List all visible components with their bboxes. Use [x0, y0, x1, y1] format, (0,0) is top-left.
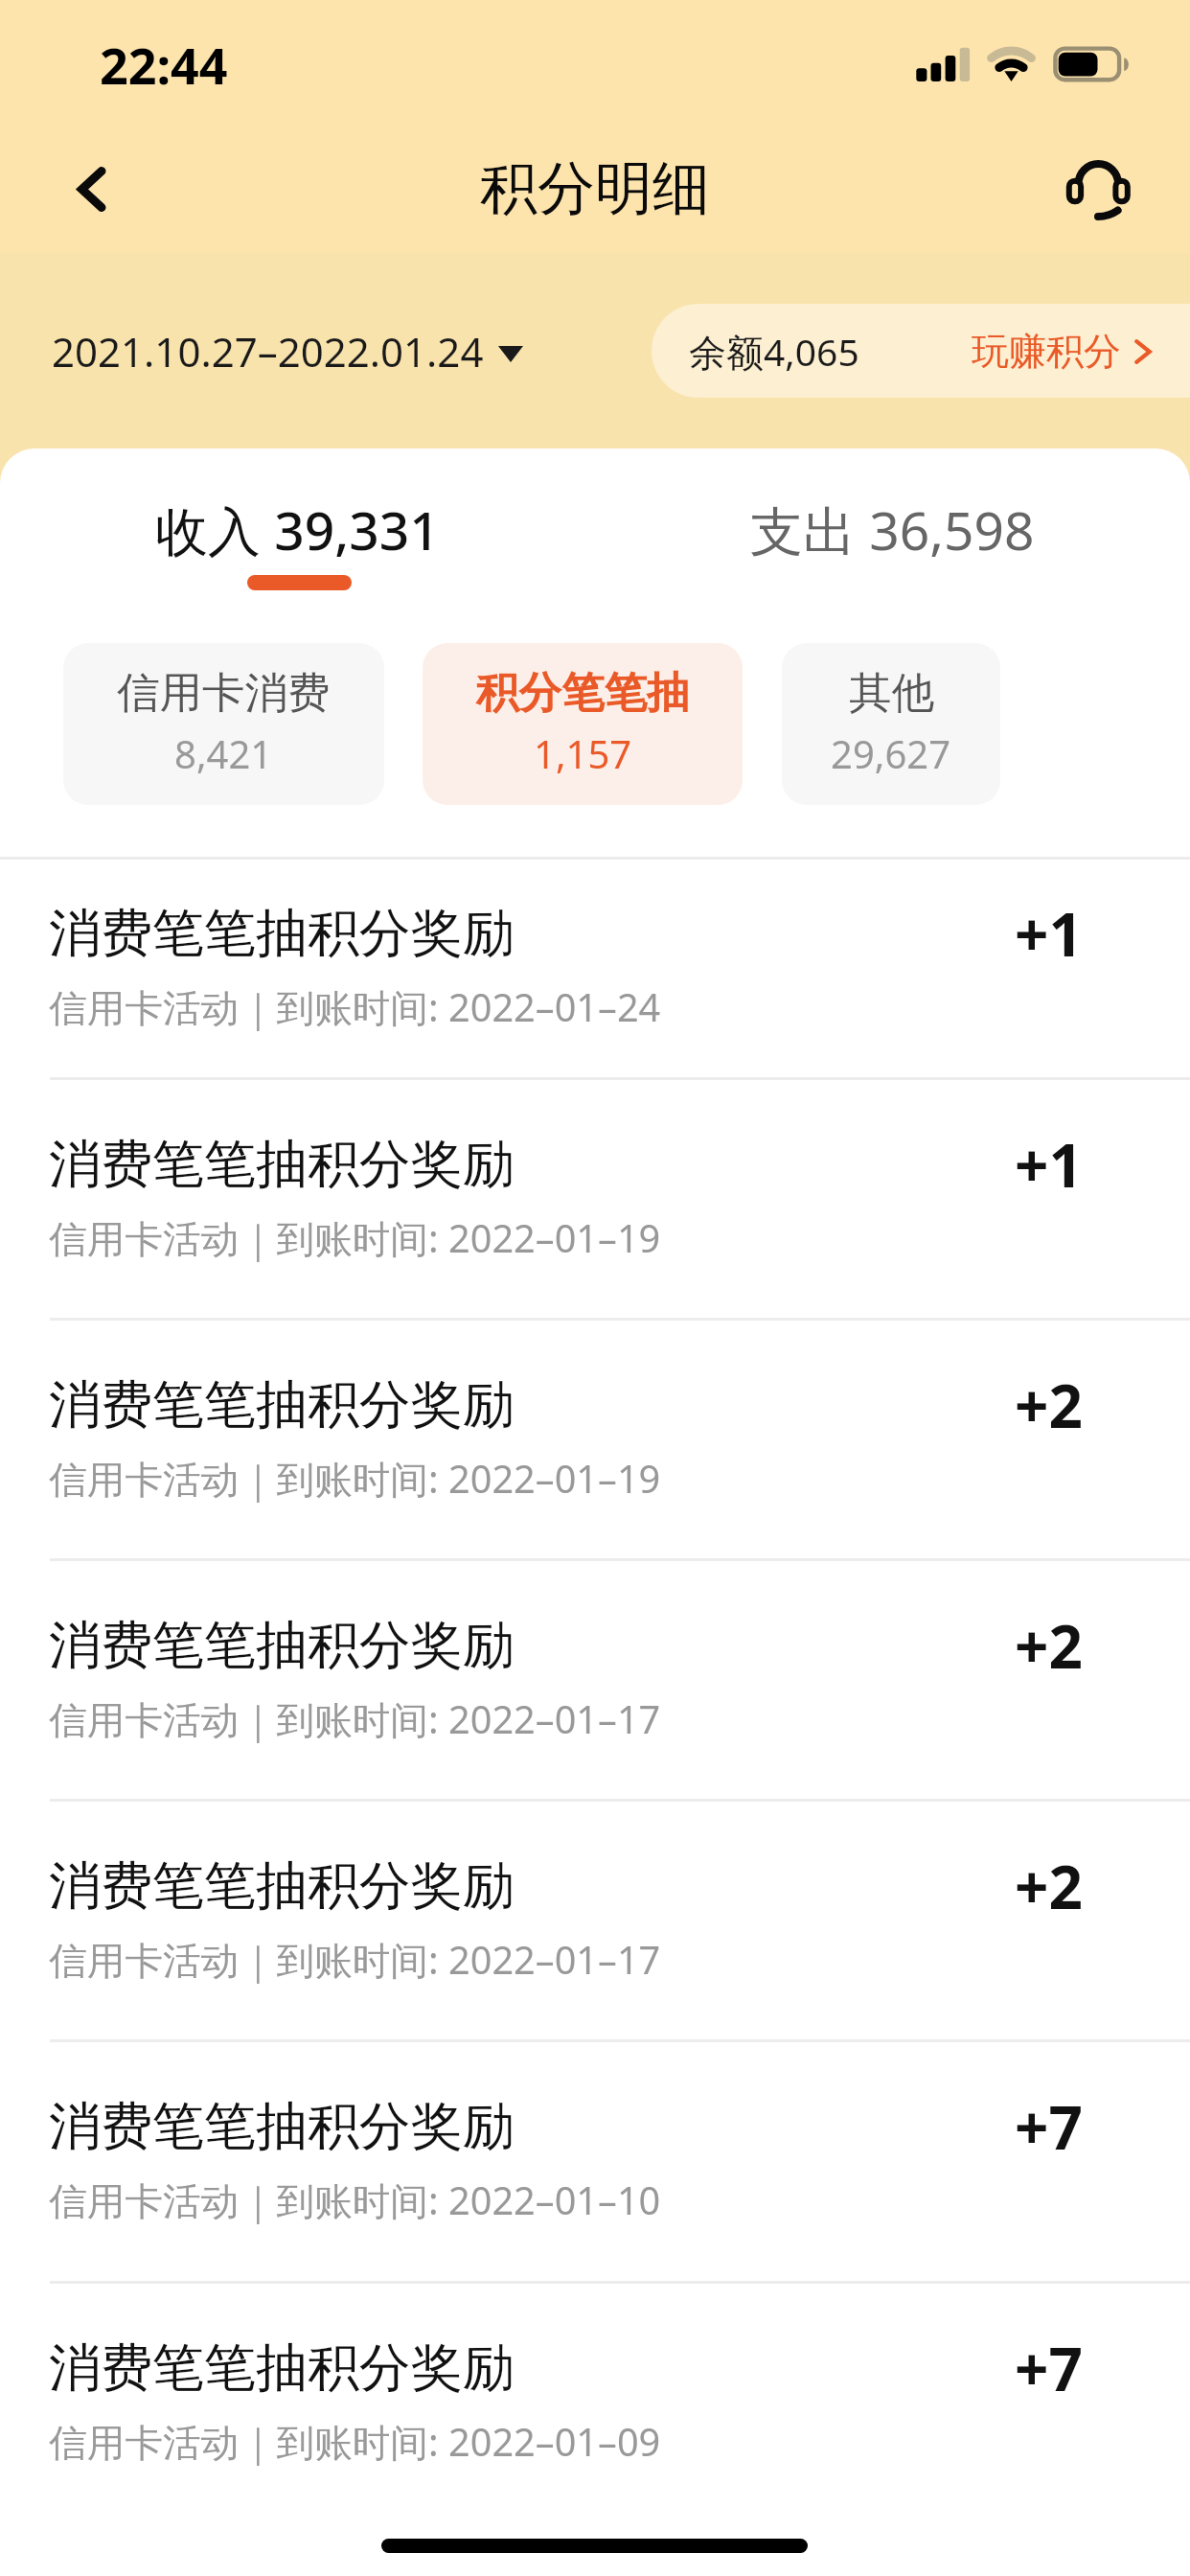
staticText: +1: [1015, 893, 1083, 974]
staticText: 消费笔笔抽积分奖励: [49, 2094, 515, 2159]
button[interactable]: 消费笔笔抽积分奖励: [0, 1802, 1190, 2042]
staticText: 消费笔笔抽积分奖励: [49, 1613, 515, 1678]
staticText: 其他: [849, 666, 934, 720]
staticText: 收入 39,331: [155, 494, 440, 565]
button[interactable]: 收入 39,331: [0, 479, 595, 580]
button[interactable]: 玩赚积分: [972, 328, 1152, 375]
button[interactable]: 消费笔笔抽积分奖励: [0, 1321, 1190, 1561]
staticText: 信用卡活动｜到账时间: 2022–01–17: [49, 1934, 661, 1986]
button[interactable]: 消费笔笔抽积分奖励: [0, 1080, 1190, 1321]
staticText: 支出 36,598: [750, 494, 1035, 565]
staticText: +7: [1015, 2328, 1083, 2408]
button[interactable]: 其他: [782, 643, 1000, 805]
staticText: 余额4,065: [689, 326, 859, 377]
button[interactable]: 消费笔笔抽积分奖励: [0, 2042, 1190, 2284]
button[interactable]: 信用卡消费: [63, 643, 384, 805]
staticText: 消费笔笔抽积分奖励: [49, 901, 515, 966]
staticText: 消费笔笔抽积分奖励: [49, 2335, 515, 2401]
button[interactable]: 支出 36,598: [595, 479, 1190, 580]
button[interactable]: 积分笔笔抽: [423, 643, 743, 805]
staticText: +2: [1015, 1365, 1083, 1445]
button[interactable]: 消费笔笔抽积分奖励: [0, 1561, 1190, 1802]
staticText: 玩赚积分: [972, 328, 1121, 375]
staticText: 29,627: [831, 727, 951, 779]
staticText: 消费笔笔抽积分奖励: [49, 1853, 515, 1919]
staticText: 信用卡活动｜到账时间: 2022–01–09: [49, 2416, 661, 2468]
staticText: +2: [1015, 1605, 1083, 1686]
button[interactable]: 消费笔笔抽积分奖励: [0, 860, 1190, 1080]
button[interactable]: Customer service: [1049, 144, 1155, 236]
staticText: 信用卡活动｜到账时间: 2022–01–19: [49, 1212, 661, 1264]
staticText: 积分明细: [480, 152, 710, 225]
staticText: 信用卡消费: [117, 666, 331, 720]
staticText: 信用卡活动｜到账时间: 2022–01–24: [49, 981, 661, 1033]
staticText: 积分笔笔抽: [476, 666, 690, 720]
button[interactable]: Back: [38, 144, 144, 236]
button[interactable]: 消费笔笔抽积分奖励: [0, 2284, 1190, 2524]
button[interactable]: 余额4,065: [652, 304, 1190, 398]
staticText: +7: [1015, 2086, 1083, 2167]
staticText: 8,421: [174, 727, 273, 779]
staticText: 信用卡活动｜到账时间: 2022–01–17: [49, 1693, 661, 1745]
staticText: +1: [1015, 1124, 1083, 1205]
staticText: 22:44: [100, 31, 228, 99]
staticText: 2021.10.27–2022.01.24: [52, 324, 484, 379]
staticText: 信用卡活动｜到账时间: 2022–01–10: [49, 2174, 661, 2226]
button[interactable]: 2021.10.27–2022.01.24: [38, 304, 546, 398]
staticText: +2: [1015, 1846, 1083, 1926]
staticText: 信用卡活动｜到账时间: 2022–01–19: [49, 1453, 661, 1505]
staticText: 消费笔笔抽积分奖励: [49, 1132, 515, 1197]
staticText: 消费笔笔抽积分奖励: [49, 1372, 515, 1437]
staticText: 1,157: [534, 727, 632, 779]
